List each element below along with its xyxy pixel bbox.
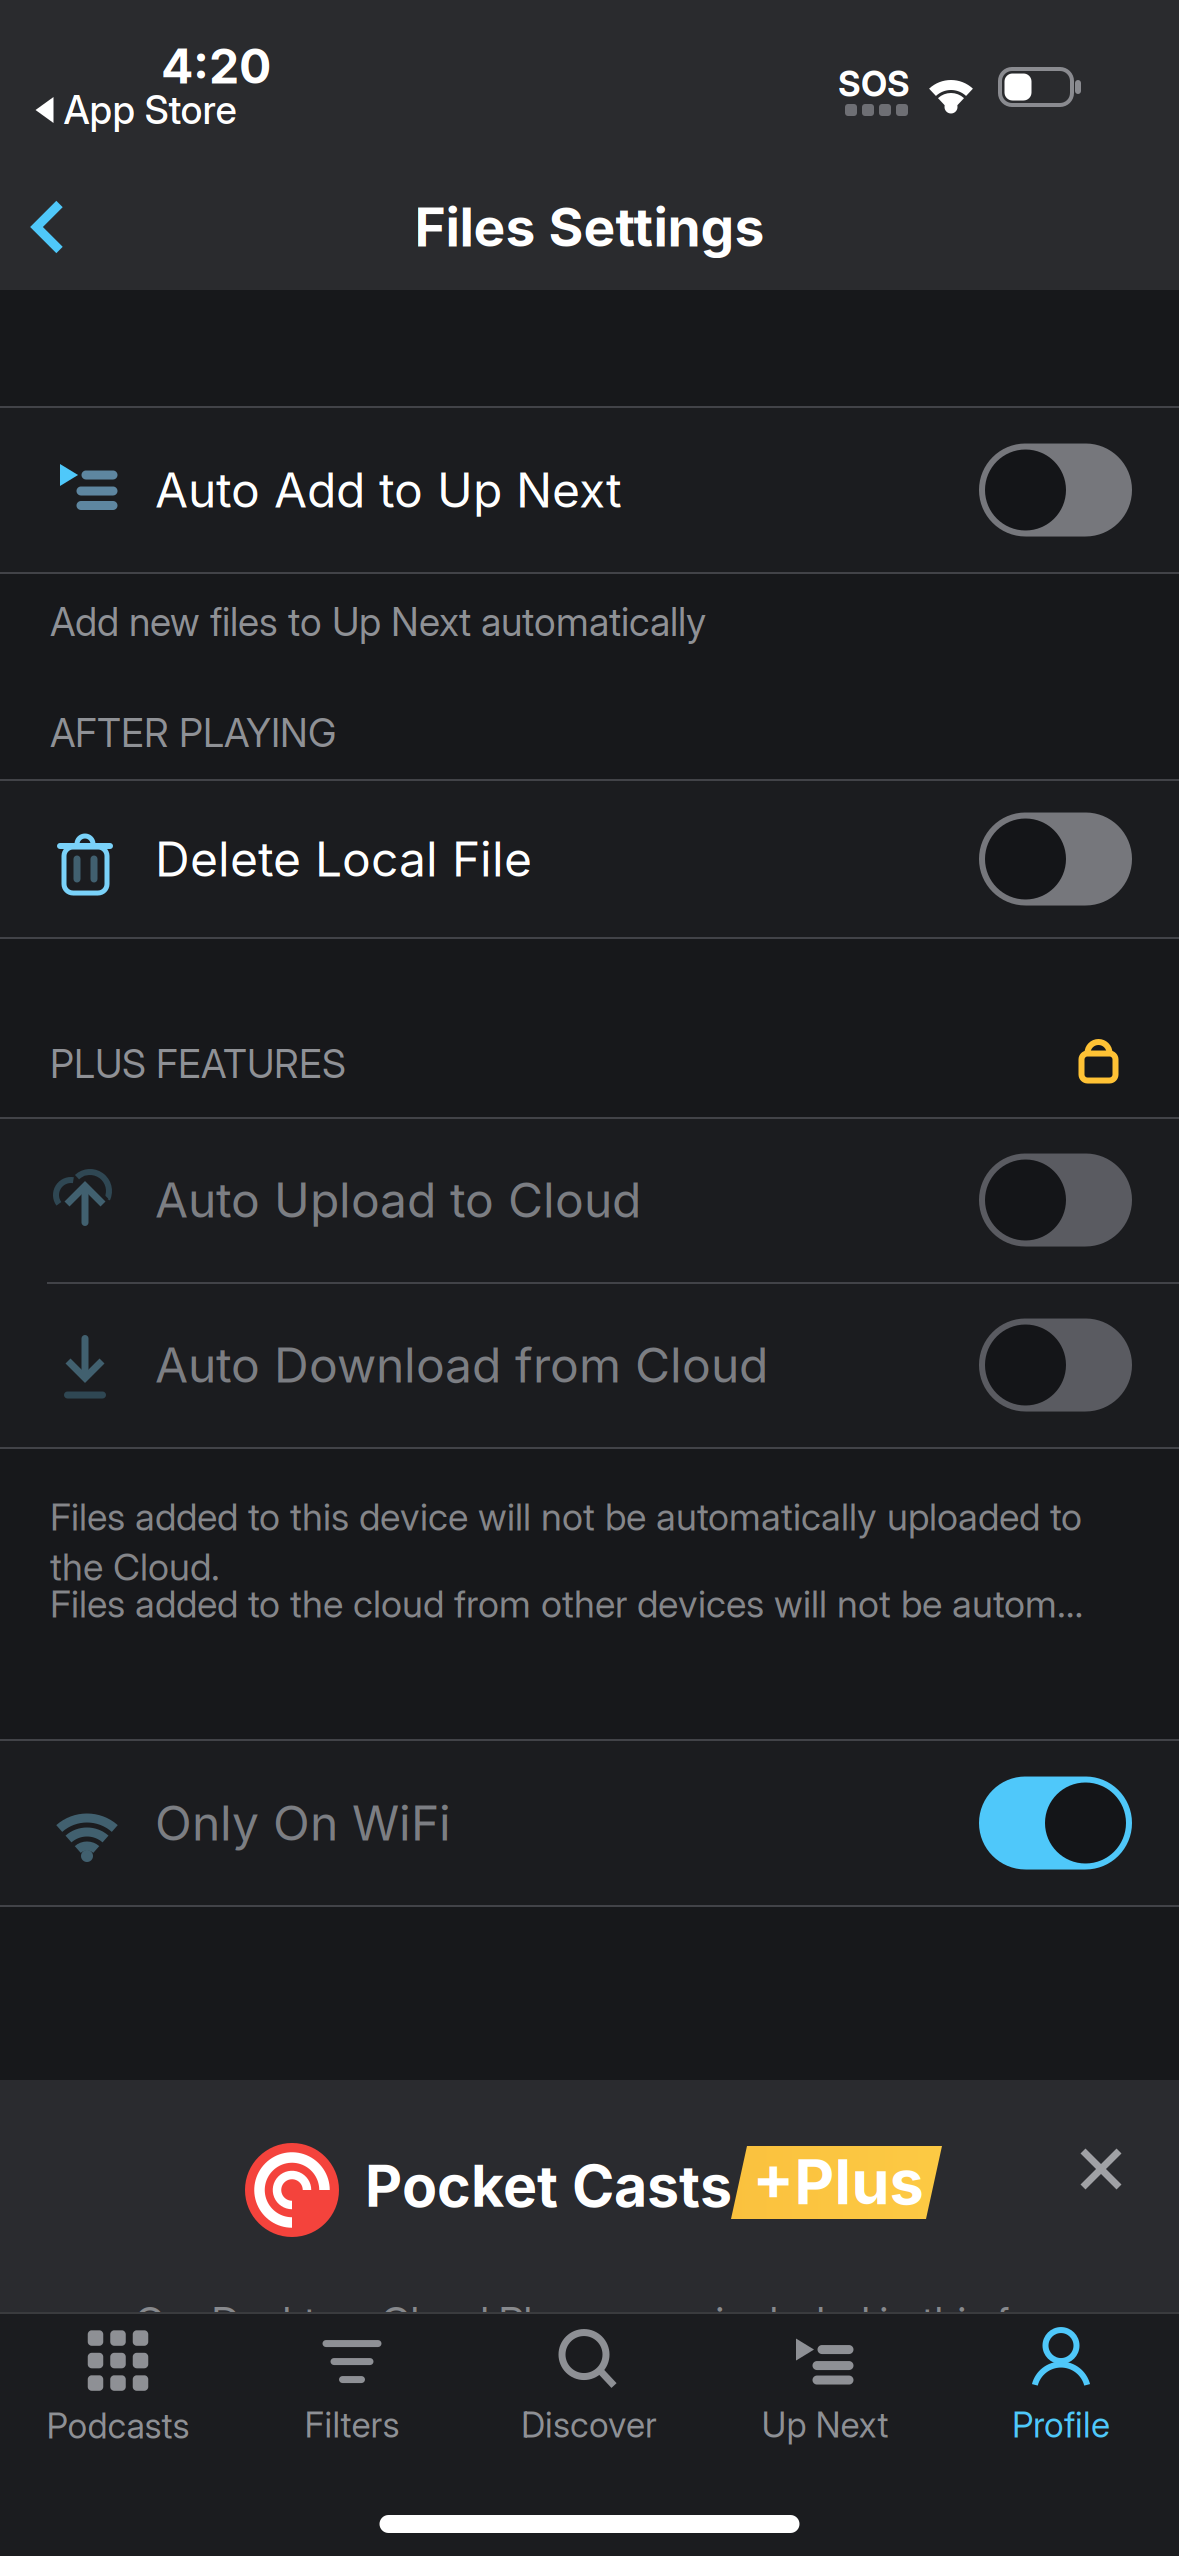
staticText: +Plus [752, 2146, 923, 2218]
staticText: 4:20 [161, 38, 271, 94]
button[interactable]: Discover [521, 2331, 657, 2445]
staticText: AFTER PLAYING [50, 710, 336, 756]
staticText: Podcasts [46, 2406, 189, 2446]
staticText: Only On WiFi [155, 1795, 451, 1851]
staticText: Files added to this device will not be a… [50, 1495, 1082, 1539]
button[interactable]: Back to App Store [35, 87, 236, 133]
button[interactable]: Back [32, 200, 63, 254]
button[interactable]: Toggle [979, 1776, 1132, 1869]
button[interactable]: Only On WiFi [0, 1740, 1179, 1906]
staticText: Auto Add to Up Next [155, 462, 622, 518]
button[interactable]: Dismiss banner [1079, 2147, 1123, 2191]
staticText: Files Settings [414, 195, 764, 258]
button[interactable]: Toggle [979, 812, 1132, 905]
staticText: App Store [63, 87, 236, 133]
button[interactable]: Auto Upload to Cloud [0, 1117, 1179, 1282]
button[interactable]: Profile [1012, 2331, 1110, 2445]
staticText: Add new files to Up Next automatically [50, 599, 706, 645]
staticText: PLUS FEATURES [50, 1041, 346, 1087]
staticText: Profile [1012, 2405, 1110, 2445]
staticText: Discover [521, 2405, 657, 2445]
staticText: the Cloud. [50, 1545, 220, 1589]
staticText: Files added to the cloud from other devi… [50, 1582, 1083, 1626]
button[interactable]: Delete Local File [0, 780, 1179, 938]
staticText: Auto Upload to Cloud [155, 1172, 641, 1228]
button[interactable]: Toggle [979, 443, 1132, 536]
button[interactable]: Toggle [979, 1153, 1132, 1246]
staticText: Pocket Casts [365, 2152, 732, 2220]
staticText: Auto Download from Cloud [155, 1337, 768, 1393]
button[interactable]: Auto Add to Up Next [0, 407, 1179, 573]
button[interactable]: Podcasts [46, 2330, 189, 2446]
staticText: Filters [304, 2405, 399, 2445]
button[interactable]: Up Next [761, 2331, 888, 2445]
staticText: Up Next [761, 2405, 888, 2445]
button[interactable]: Filters [304, 2331, 399, 2445]
staticText: Delete Local File [155, 831, 532, 887]
button[interactable]: Auto Download from Cloud [0, 1282, 1179, 1447]
staticText: SOS [838, 64, 910, 104]
staticText: Our Desktop, Cloud Player apps included … [134, 2298, 1044, 2346]
button[interactable]: Toggle [979, 1318, 1132, 1411]
